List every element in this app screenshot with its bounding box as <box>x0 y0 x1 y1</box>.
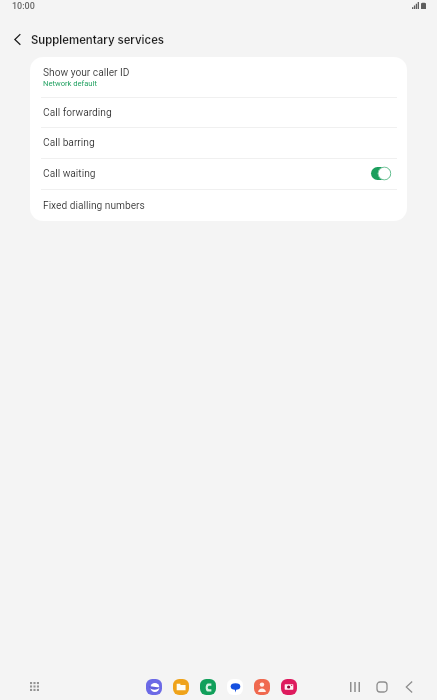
staticText: Show your caller ID <box>43 67 130 79</box>
staticText: Call waiting <box>43 168 96 180</box>
button[interactable]: Camera <box>281 679 297 695</box>
button[interactable]: Home <box>372 677 392 697</box>
button[interactable]: Internet <box>146 679 162 695</box>
staticText: Fixed dialling numbers <box>43 200 145 212</box>
button[interactable]: Contacts <box>254 679 270 695</box>
button[interactable]: Messages <box>227 679 243 695</box>
button[interactable]: Call forwarding <box>30 98 407 127</box>
staticText: Supplementary services <box>31 33 165 47</box>
staticText: Network default <box>43 79 97 88</box>
button[interactable]: Call waiting <box>30 159 407 189</box>
button[interactable]: Recent apps <box>345 677 365 697</box>
staticText: Call forwarding <box>43 107 112 119</box>
button[interactable]: Call waiting, on <box>371 167 391 180</box>
button[interactable]: Show your caller ID <box>30 57 407 97</box>
button[interactable]: My Files <box>173 679 189 695</box>
staticText: 10:00 <box>12 1 35 12</box>
button[interactable]: Apps <box>21 673 48 700</box>
button[interactable]: Back <box>399 677 419 697</box>
button[interactable]: Navigate up <box>3 25 31 53</box>
button[interactable]: Fixed dialling numbers <box>30 190 407 221</box>
staticText: Call barring <box>43 137 95 149</box>
button[interactable]: Phone <box>200 679 216 695</box>
button[interactable]: Call barring <box>30 128 407 158</box>
